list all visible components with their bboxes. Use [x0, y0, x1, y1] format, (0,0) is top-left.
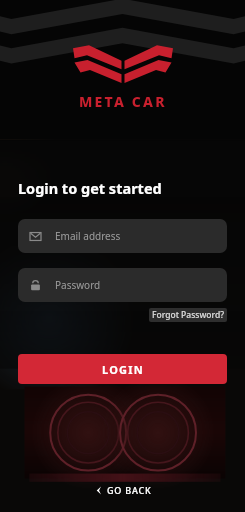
- staticText: GO BACK: [107, 484, 152, 496]
- staticText: Forgot Password?: [152, 309, 224, 321]
- staticText: Login to get started: [18, 178, 162, 198]
- staticText: Password: [55, 278, 101, 292]
- staticText: META CAR: [79, 92, 167, 111]
- button[interactable]: Forgot Password?: [149, 308, 227, 322]
- button[interactable]: Password: [18, 268, 227, 302]
- button[interactable]: GO BACK: [84, 480, 162, 500]
- staticText: LOGIN: [102, 362, 144, 377]
- button[interactable]: LOGIN: [18, 354, 227, 384]
- button[interactable]: Email address: [18, 219, 227, 253]
- staticText: Email address: [55, 229, 121, 243]
